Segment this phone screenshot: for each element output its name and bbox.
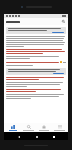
button[interactable]: Recents: [50, 133, 57, 140]
button[interactable]: Feed: [5, 123, 20, 132]
button[interactable]: More: [52, 123, 67, 132]
button[interactable]: Search: [61, 19, 66, 24]
button[interactable]: Back: [15, 133, 22, 140]
button[interactable]: Jobs: [36, 123, 51, 132]
button[interactable]: Home: [33, 133, 40, 140]
button[interactable]: Explore: [21, 123, 36, 132]
button[interactable]: [6, 68, 66, 75]
button[interactable]: [6, 27, 66, 34]
